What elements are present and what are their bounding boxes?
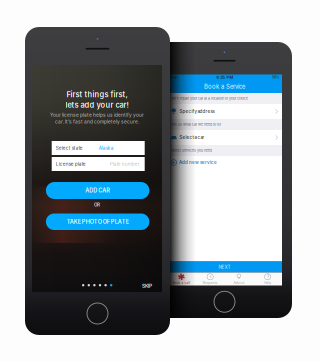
staticText: Help: [264, 281, 271, 285]
staticText: Book a Service: [204, 83, 245, 90]
staticText: ?: [267, 274, 269, 280]
staticText: Your license plate helps us identify you…: [50, 112, 144, 118]
button[interactable]: Specify address: [167, 104, 282, 119]
staticText: SKIP: [142, 283, 152, 289]
staticText: OR: [94, 202, 100, 207]
staticText: 6:25 PM: [216, 75, 233, 80]
staticText: License plate: [56, 161, 86, 167]
button[interactable]: Requests: [196, 273, 225, 285]
staticText: AT&T: [170, 75, 178, 79]
staticText: Select state: [56, 145, 83, 151]
staticText: Select services you need: [171, 148, 212, 153]
staticText: Book a call: [172, 281, 190, 285]
button[interactable]: Add new service: [167, 156, 282, 169]
button[interactable]: TAKE PHOTO OF PLATE: [46, 213, 149, 230]
staticText: ADD CAR: [85, 187, 110, 194]
staticText: 56%: [272, 75, 279, 79]
button[interactable]: Select a car: [167, 130, 282, 145]
staticText: lets add your car!: [65, 100, 128, 109]
staticText: Specify address: [180, 109, 215, 114]
staticText: car. It's fast and completely secure.: [55, 119, 139, 125]
button[interactable]: Book a call: [167, 273, 196, 285]
staticText: First things first,: [66, 90, 127, 99]
staticText: Advice: [233, 281, 244, 285]
button[interactable]: ADD CAR: [46, 182, 149, 199]
button[interactable]: ?: [253, 273, 282, 285]
button[interactable]: SKIP: [142, 283, 152, 289]
staticText: We'll repair your car at a location of y…: [171, 96, 248, 101]
staticText: Plate number: [110, 161, 140, 167]
staticText: Tell us what car we need to fix: [171, 122, 221, 127]
staticText: Select a car: [180, 135, 205, 140]
staticText: Alaska: [99, 145, 114, 151]
staticText: Requests: [203, 281, 218, 285]
button[interactable]: Advice: [224, 273, 253, 285]
staticText: Add new service: [179, 160, 217, 165]
staticText: TAKE PHOTO OF PLATE: [67, 218, 129, 225]
staticText: NEXT: [218, 264, 230, 270]
button[interactable]: NEXT: [167, 261, 282, 272]
